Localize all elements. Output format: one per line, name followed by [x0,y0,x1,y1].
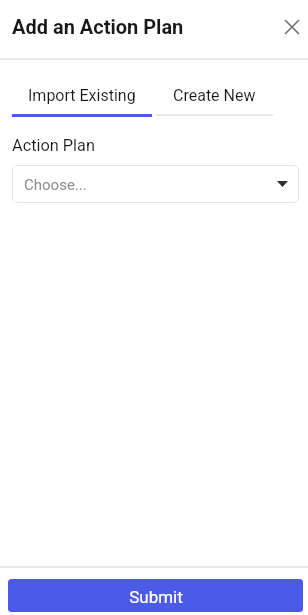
button[interactable]: Import Existing [12,59,152,117]
button[interactable]: Submit [8,579,303,612]
button[interactable]: Choose... [12,165,299,203]
button[interactable]: Close [272,7,308,47]
staticText: Submit [129,587,183,607]
staticText: Create New [173,86,256,105]
staticText: Add an Action Plan [12,15,184,38]
button[interactable]: Create New [156,59,273,116]
staticText: Action Plan [12,136,95,155]
staticText: Choose... [24,176,277,194]
staticText: Import Existing [28,86,136,105]
